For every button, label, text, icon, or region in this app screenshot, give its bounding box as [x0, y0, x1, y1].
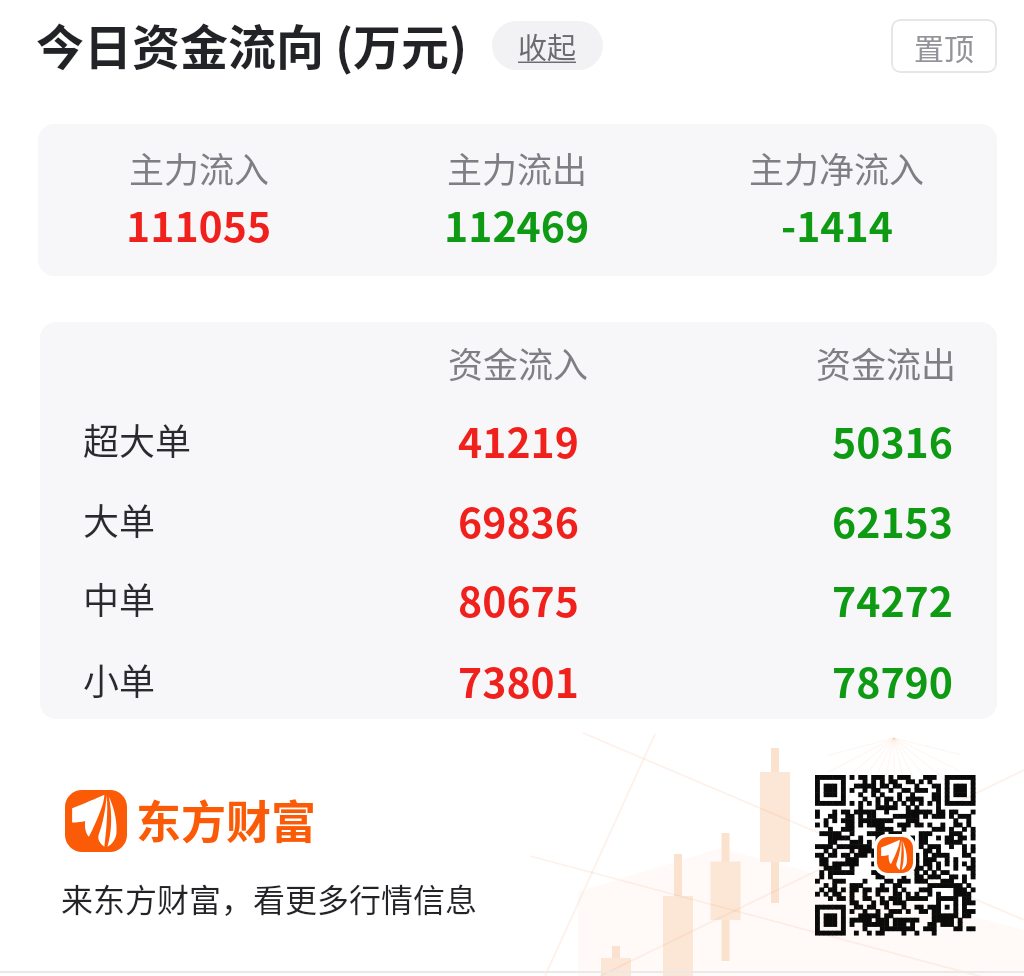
button[interactable]: [40, 399, 997, 479]
staticText: 78790: [832, 650, 953, 709]
staticText: 收起: [518, 25, 577, 67]
staticText: 111055: [126, 194, 272, 253]
staticText: 东方财富: [136, 787, 317, 852]
staticText: 主力流入: [129, 142, 270, 193]
staticText: 50316: [832, 410, 953, 469]
staticText: 69836: [458, 490, 579, 549]
button[interactable]: 主力流入: [59, 124, 339, 276]
button[interactable]: 主力净流入: [697, 124, 977, 276]
button[interactable]: 收起: [492, 21, 603, 70]
staticText: 置顶: [914, 25, 974, 68]
staticText: 大单: [83, 493, 156, 545]
staticText: 资金流入: [448, 337, 589, 388]
button[interactable]: [40, 558, 997, 638]
staticText: 112469: [444, 194, 590, 253]
staticText: 来东方财富，看更多行情信息: [61, 875, 478, 921]
staticText: 73801: [458, 650, 579, 709]
staticText: 中单: [83, 572, 156, 624]
staticText: 80675: [458, 569, 579, 628]
staticText: -1414: [781, 194, 893, 253]
staticText: 小单: [83, 653, 156, 705]
staticText: 74272: [832, 569, 953, 628]
button[interactable]: QR code: [815, 775, 975, 935]
staticText: 主力净流入: [749, 142, 925, 193]
button[interactable]: [40, 639, 997, 719]
staticText: 主力流出: [447, 142, 588, 193]
button[interactable]: [40, 479, 997, 559]
button[interactable]: 主力流出: [377, 124, 657, 276]
staticText: 62153: [832, 490, 953, 549]
button[interactable]: 置顶: [891, 19, 997, 73]
staticText: 资金流出: [816, 337, 957, 388]
staticText: 超大单: [83, 413, 192, 465]
staticText: 41219: [458, 410, 579, 469]
button[interactable]: 东方财富 app promotion: [40, 770, 510, 910]
staticText: 今日资金流向 (万元): [36, 9, 468, 79]
